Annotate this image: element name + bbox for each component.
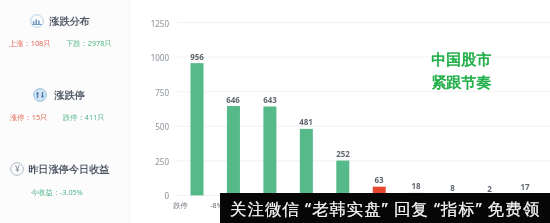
staticText: 252 <box>336 148 350 159</box>
staticText: -2% <box>283 200 296 210</box>
staticText: 1250 <box>150 18 169 29</box>
staticText: 18 <box>411 180 421 191</box>
button[interactable]: 涨跌停 <box>0 85 134 105</box>
staticText: 63 <box>374 174 384 185</box>
staticText: 涨跌停 <box>54 89 85 102</box>
staticText: 0% <box>321 200 332 210</box>
staticText: 0 <box>164 190 169 201</box>
staticText: -5% <box>247 200 260 210</box>
staticText: 5% <box>394 200 405 210</box>
other: 昨日涨停今日收益 <box>10 162 24 176</box>
staticText: 涨跌分布 <box>49 15 90 28</box>
staticText: 956 <box>190 51 204 62</box>
staticText: 跌停：411只 <box>63 112 105 122</box>
staticText: 643 <box>263 94 277 105</box>
staticText: 1000 <box>150 52 169 63</box>
staticText: 481 <box>299 116 313 127</box>
staticText: 中国股市 <box>431 51 491 70</box>
button[interactable]: 涨跌分布 <box>0 11 134 31</box>
staticText: 646 <box>226 94 240 105</box>
staticText: 涨停：15只 <box>10 112 48 122</box>
button[interactable]: 昨日涨停今日收益 <box>0 159 134 179</box>
staticText: 今收益：-3.05% <box>31 187 83 197</box>
staticText: 17 <box>520 181 530 192</box>
staticText: -8% <box>210 200 223 210</box>
staticText: 2 <box>487 183 492 194</box>
staticText: 下跌：2978只 <box>66 38 112 48</box>
staticText: 2% <box>357 200 368 210</box>
staticText: 8% <box>430 200 441 210</box>
staticText: 250 <box>155 156 169 167</box>
button[interactable]: 中国股市 <box>431 51 491 93</box>
staticText: 紧跟节奏 <box>431 74 491 93</box>
staticText: 750 <box>155 87 169 98</box>
staticText: 跌停 <box>173 201 188 210</box>
other: 涨跌停 <box>33 88 47 102</box>
staticText: 500 <box>155 121 169 132</box>
staticText: 关注微信 “老韩实盘” 回复 “指标” 免费领 <box>230 197 541 220</box>
staticText: 8 <box>450 182 455 193</box>
staticText: 涨停 <box>465 201 480 210</box>
staticText: 上涨：108只 <box>9 38 51 48</box>
other: 涨跌分布 <box>30 14 44 28</box>
staticText: 昨日涨停今日收益 <box>28 163 110 176</box>
button[interactable]: 关注微信 “老韩实盘” 回复 “指标” 免费领 <box>220 193 550 223</box>
staticText: ¥ <box>15 163 20 175</box>
